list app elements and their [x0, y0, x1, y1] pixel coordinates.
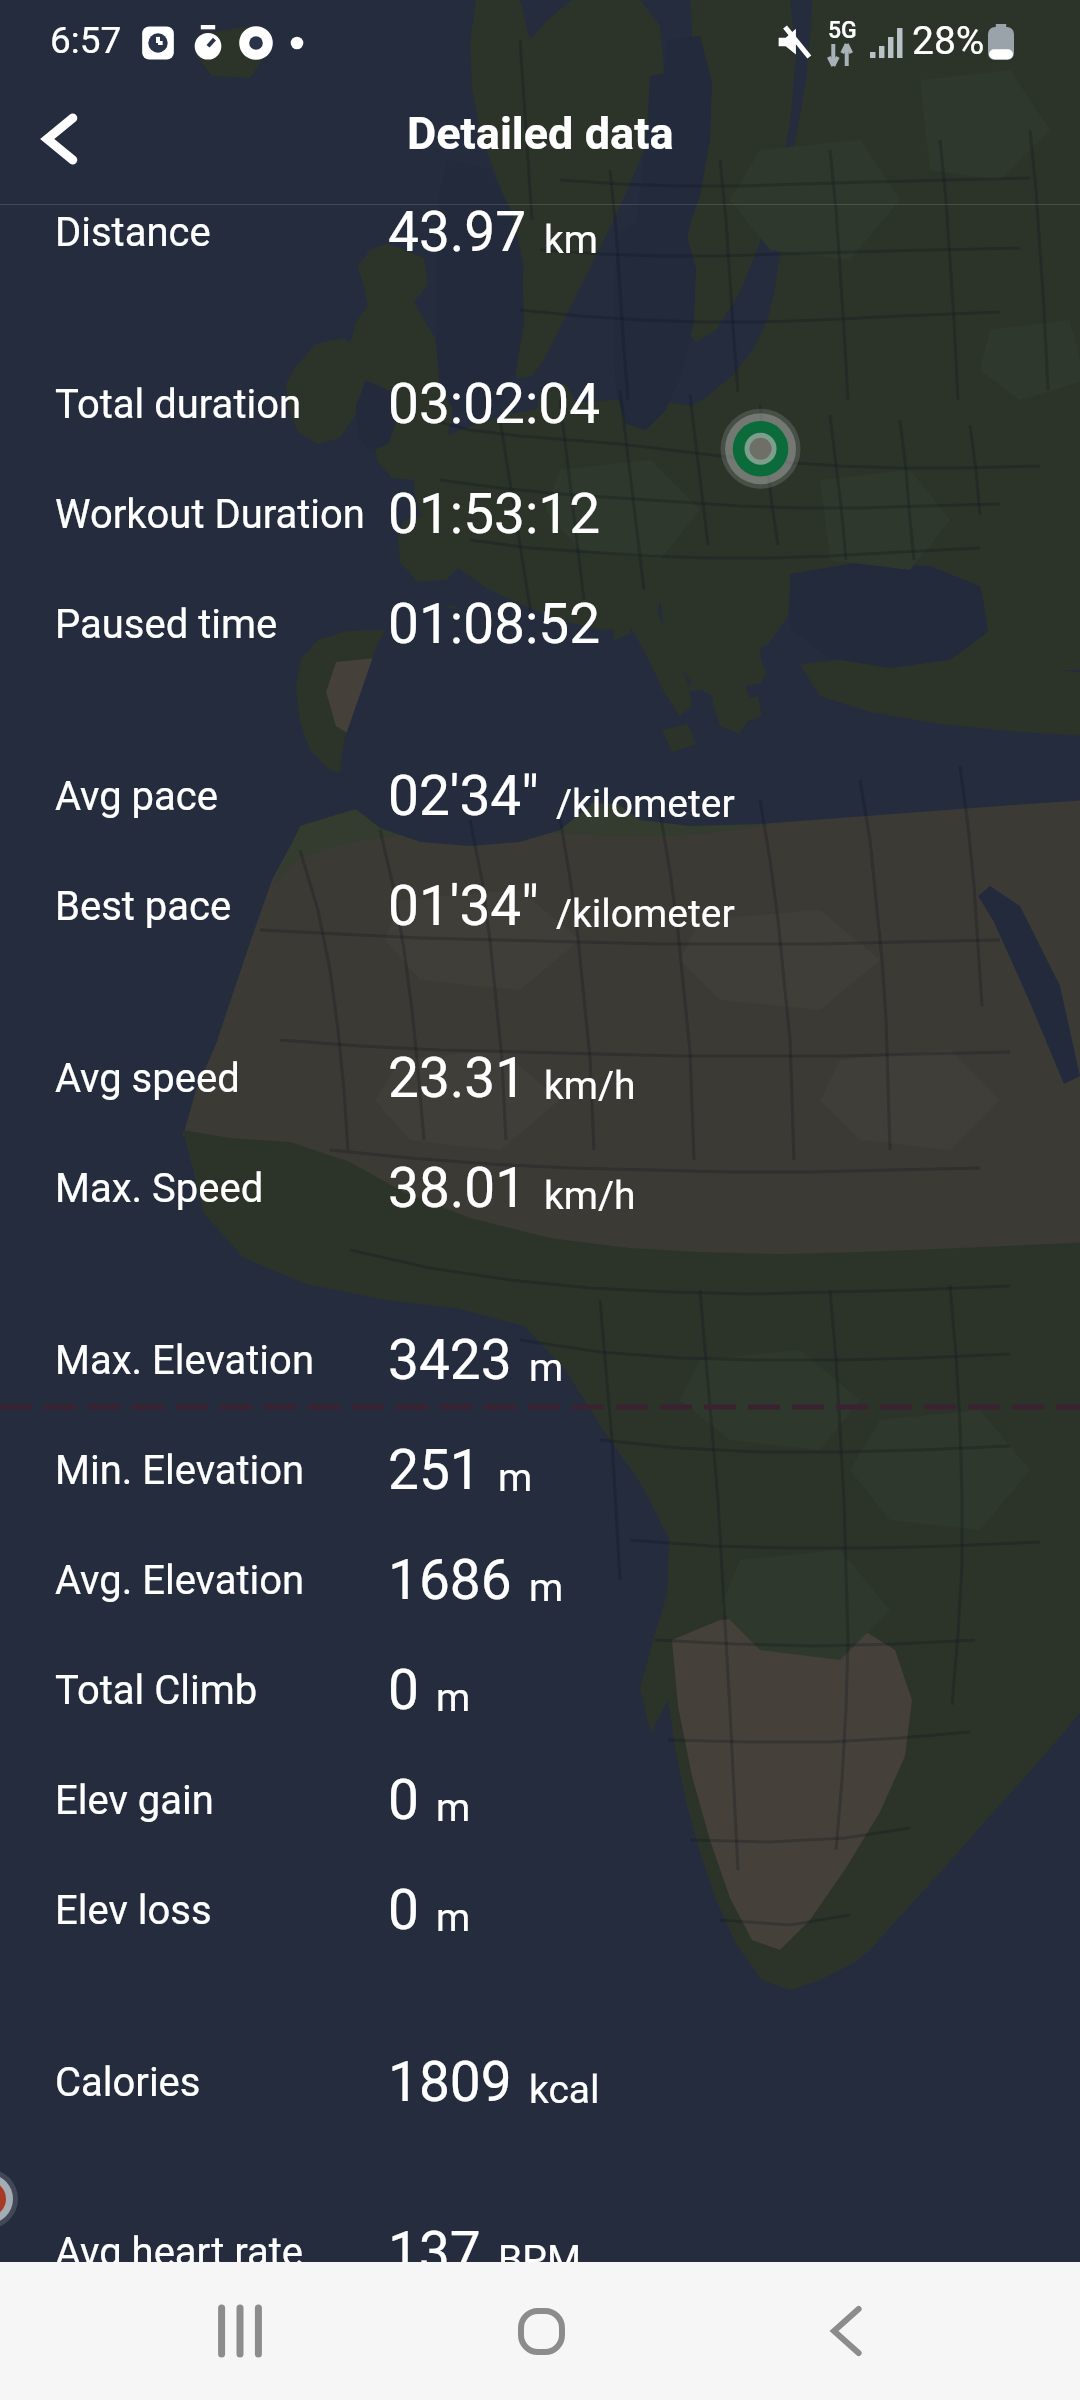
button[interactable]: Back [786, 2271, 906, 2391]
button[interactable]: Calories [0, 2027, 1080, 2137]
staticText: 43.97 [388, 200, 527, 264]
staticText: 6:57 [50, 19, 122, 62]
staticText: 1686 [388, 1548, 512, 1612]
staticText: /kilometer [556, 891, 735, 937]
staticText: 38.01 [388, 1156, 527, 1220]
staticText: /kilometer [556, 781, 735, 827]
staticText: Total duration [55, 381, 302, 428]
staticText: 251 [388, 1438, 481, 1502]
staticText: 03:02:04 [388, 372, 601, 436]
staticText: Paused time [55, 601, 278, 648]
button[interactable]: Max. Speed [0, 1133, 1080, 1243]
staticText: 28% [912, 18, 985, 64]
staticText: 23.31 [388, 1046, 527, 1110]
staticText: m [498, 1455, 533, 1501]
staticText: 01:53:12 [388, 482, 601, 546]
staticText: km [544, 217, 598, 263]
staticText: Avg. Elevation [55, 1557, 305, 1604]
button[interactable]: Paused time [0, 569, 1080, 679]
staticText: Avg pace [55, 773, 218, 820]
button[interactable]: Best pace [0, 851, 1080, 961]
staticText: Best pace [55, 883, 232, 930]
staticText: m [529, 1345, 564, 1391]
staticText: 1809 [388, 2050, 512, 2114]
button[interactable]: Elev gain [0, 1745, 1080, 1855]
staticText: 5G [828, 17, 857, 44]
button[interactable]: Recent apps [180, 2271, 300, 2391]
staticText: kcal [529, 2067, 600, 2113]
staticText: Elev gain [55, 1777, 214, 1824]
button[interactable]: Total Climb [0, 1635, 1080, 1745]
staticText: Distance [55, 209, 211, 256]
staticText: m [529, 1565, 564, 1611]
staticText: 0 [388, 1768, 419, 1832]
staticText: Min. Elevation [55, 1447, 305, 1494]
button[interactable]: Elev loss [0, 1855, 1080, 1965]
button[interactable]: Min. Elevation [0, 1415, 1080, 1525]
staticText: Elev loss [55, 1887, 212, 1934]
staticText: Max. Elevation [55, 1337, 314, 1384]
staticText: 3423 [388, 1328, 512, 1392]
staticText: km/h [544, 1063, 636, 1109]
staticText: km/h [544, 1173, 636, 1219]
staticText: 0 [388, 1878, 419, 1942]
staticText: m [436, 1785, 471, 1831]
staticText: Avg speed [55, 1055, 240, 1102]
staticText: BPM [498, 2237, 581, 2283]
staticText: Detailed data [407, 107, 674, 160]
button[interactable]: Total duration [0, 349, 1080, 459]
staticText: m [436, 1895, 471, 1941]
button[interactable]: Workout Duration [0, 459, 1080, 569]
staticText: Workout Duration [55, 491, 365, 538]
staticText: Total Climb [55, 1667, 258, 1714]
staticText: Avg heart rate [55, 2229, 303, 2276]
button[interactable]: Avg. Elevation [0, 1525, 1080, 1635]
staticText: Calories [55, 2059, 201, 2106]
button[interactable]: Avg pace [0, 741, 1080, 851]
button[interactable]: Back [18, 97, 102, 181]
staticText: m [436, 1675, 471, 1721]
button[interactable]: Avg heart rate [0, 2197, 1080, 2307]
staticText: Max. Speed [55, 1165, 264, 1212]
staticText: 01:08:52 [388, 592, 601, 656]
staticText: 02'34" [388, 764, 539, 828]
button[interactable]: Home [481, 2271, 601, 2391]
staticText: 01'34" [388, 874, 539, 938]
button[interactable]: Max. Elevation [0, 1305, 1080, 1415]
staticText: 0 [388, 1658, 419, 1722]
button[interactable]: Distance [0, 177, 1080, 287]
staticText: 137 [388, 2220, 481, 2284]
button[interactable]: Avg speed [0, 1023, 1080, 1133]
